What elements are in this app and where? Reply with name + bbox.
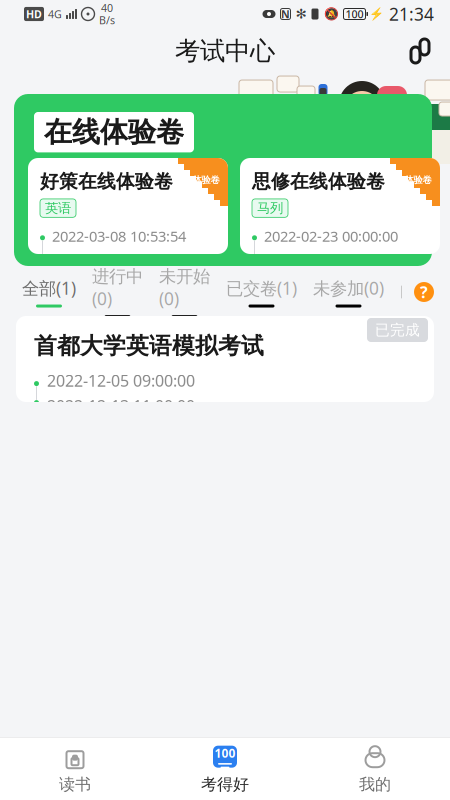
staticText: 4G — [48, 7, 62, 21]
staticText: 首都大学英语模拟考试 — [34, 332, 264, 360]
staticText: 体验卷 — [404, 174, 431, 186]
button[interactable]: 好策在线体验卷 — [28, 158, 228, 254]
staticText: 思修在线体验卷 — [252, 170, 385, 193]
staticText: 100 — [345, 7, 363, 21]
staticText: 未参加(0) — [313, 276, 384, 299]
staticText: 英语 — [45, 200, 71, 216]
staticText: 2022-12-13 11:00:00 — [47, 395, 195, 416]
staticText: 读书 — [59, 775, 91, 794]
staticText: ⚡ — [369, 7, 384, 21]
staticText: 100 — [214, 745, 235, 761]
staticText: HD — [26, 7, 42, 21]
staticText: 40 — [101, 1, 113, 15]
button[interactable]: 未参加(0) — [305, 270, 392, 314]
button[interactable]: 未开始(0) — [151, 270, 218, 314]
button[interactable]: 我的 — [300, 738, 450, 800]
button[interactable]: 思修在线体验卷 — [240, 158, 440, 254]
button[interactable]: 读书 — [0, 738, 150, 800]
button[interactable]: 全部(1) — [14, 270, 84, 314]
staticText: 21:34 — [389, 2, 434, 25]
staticText: 2022-03-08 10:53:54 — [52, 226, 186, 246]
staticText: 2022-02-23 00:00:00 — [264, 226, 398, 246]
staticText: 我的 — [359, 775, 391, 794]
staticText: 🔕 — [323, 7, 338, 21]
button[interactable]: 帮助 — [414, 282, 434, 302]
staticText: 2023-06-30 19:00:00 — [52, 249, 186, 268]
staticText: 已完成 — [375, 321, 420, 339]
button[interactable]: 进行中(0) — [84, 270, 151, 314]
staticText: ✻ — [295, 6, 306, 21]
staticText: 考得好 — [201, 775, 249, 794]
button[interactable]: 100 — [150, 738, 300, 800]
staticText: B/s — [99, 13, 115, 27]
staticText: N — [281, 7, 290, 21]
button[interactable]: 分享链接 — [398, 29, 442, 73]
staticText: 考试中心 — [175, 35, 275, 66]
staticText: 进行中(0) — [92, 266, 143, 310]
staticText: ? — [420, 281, 428, 303]
staticText: 马列 — [257, 200, 283, 216]
staticText: 2022-12-10 19:00:00 — [264, 249, 398, 268]
button[interactable]: 首都大学英语模拟考试 — [16, 316, 434, 402]
staticText: 全部(1) — [22, 276, 76, 299]
staticText: 好策在线体验卷 — [40, 170, 173, 193]
staticText: 在线体验卷 — [44, 115, 184, 149]
staticText: 2022-12-05 09:00:00 — [47, 370, 195, 391]
button[interactable]: 已交卷(1) — [218, 270, 305, 314]
staticText: 已交卷(1) — [226, 276, 297, 299]
staticText: 未开始(0) — [159, 266, 210, 310]
staticText: 体验卷 — [192, 174, 219, 186]
